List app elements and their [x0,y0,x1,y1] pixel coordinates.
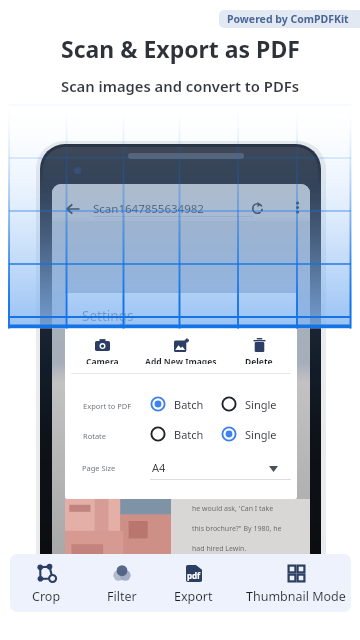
button[interactable]: Thumbnail Mode [236,554,351,612]
button[interactable]: Add New Images [141,332,221,364]
button[interactable]: Powered by ComPDFKit [219,10,360,28]
button[interactable]: Batch [146,392,204,416]
staticText: Filter [107,588,137,605]
button[interactable]: Rotate [247,197,268,218]
staticText: Delete [245,356,273,364]
staticText: Settings [82,307,134,325]
button[interactable]: Single [217,392,277,416]
staticText: Thumbnail Mode [246,588,346,605]
staticText: Export to PDF [83,401,132,411]
staticText: Scan1647855634982 [93,201,204,217]
staticText: had hired Lewin. [192,544,247,554]
staticText: Page Size [82,463,116,473]
staticText: Single [245,427,277,442]
button[interactable]: Back [62,197,83,218]
staticText: Batch [174,427,204,442]
staticText: Scan & Export as PDF [61,33,300,64]
staticText: Camera [86,356,119,364]
staticText: Export [174,588,213,605]
staticText: this brochure?" By 1980, he [192,524,282,534]
staticText: he would ask, 'Can I take [192,504,274,514]
staticText: Crop [32,588,61,605]
button[interactable]: Filter [82,554,162,612]
button[interactable]: Camera [65,332,142,364]
staticText: Batch [174,397,204,412]
staticText: Add New Images [145,356,217,364]
staticText: pdf [187,570,201,581]
button[interactable]: Crop [10,554,86,612]
staticText: Powered by ComPDFKit [227,12,349,26]
staticText: Scan images and convert to PDFs [61,76,300,96]
staticText: Single [245,397,277,412]
staticText: A4 [152,460,166,475]
button[interactable]: Delete [219,332,297,364]
button[interactable]: pdf [153,554,233,612]
button[interactable]: More options [287,197,308,218]
button[interactable]: Single [217,422,277,446]
staticText: Rotate [83,431,107,441]
button[interactable]: Batch [146,422,204,446]
